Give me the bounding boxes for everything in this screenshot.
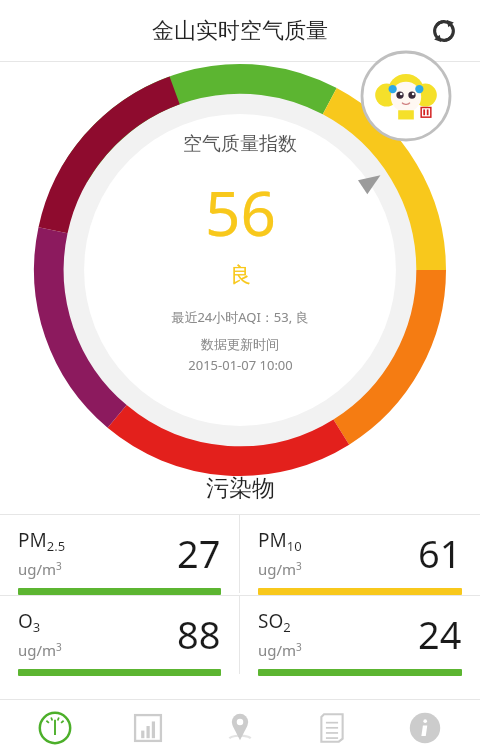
button[interactable]: O3 xyxy=(0,596,239,676)
staticText: ug/m3 xyxy=(18,559,62,579)
staticText: 61 xyxy=(418,527,462,579)
button[interactable]: Refresh xyxy=(422,9,466,53)
button[interactable]: Locations xyxy=(203,700,277,755)
staticText: 27 xyxy=(177,527,221,579)
staticText: 88 xyxy=(177,608,221,660)
staticText: O3 xyxy=(18,608,41,636)
staticText: ug/m3 xyxy=(18,640,62,660)
staticText: ug/m3 xyxy=(258,559,302,579)
staticText: PM10 xyxy=(258,527,302,555)
button[interactable]: Info xyxy=(388,700,462,755)
staticText: ug/m3 xyxy=(258,640,302,660)
button[interactable]: 金山实时空气质量 xyxy=(144,13,336,49)
staticText: 2015-01-07 10:00 xyxy=(188,356,293,374)
button[interactable]: PM10 xyxy=(240,515,480,595)
staticText: 金山实时空气质量 xyxy=(152,17,328,45)
staticText: 56 xyxy=(205,170,276,254)
button[interactable]: Dashboard xyxy=(18,700,92,755)
staticText: SO2 xyxy=(258,608,291,636)
staticText: 数据更新时间 xyxy=(201,336,279,352)
staticText: 污染物 xyxy=(206,474,275,503)
staticText: 空气质量指数 xyxy=(183,132,297,156)
staticText: 最近24小时AQI：53, 良 xyxy=(171,308,309,326)
button[interactable]: Statistics xyxy=(111,700,185,755)
button[interactable]: Mascot xyxy=(360,50,452,142)
button[interactable]: SO2 xyxy=(240,596,480,676)
button[interactable]: Reports xyxy=(295,700,369,755)
staticText: 24 xyxy=(418,608,462,660)
button[interactable]: PM2.5 xyxy=(0,515,239,595)
staticText: 良 xyxy=(230,262,251,288)
staticText: PM2.5 xyxy=(18,527,66,555)
